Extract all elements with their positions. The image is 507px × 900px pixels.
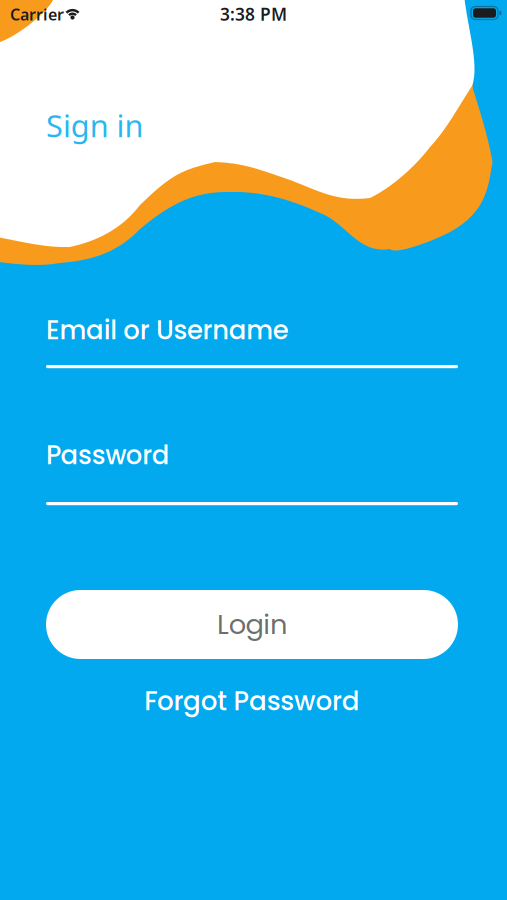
staticText: 3:38 PM — [220, 3, 287, 26]
staticText: Login — [217, 605, 287, 644]
button[interactable]: Login — [46, 590, 458, 659]
staticText: Password — [46, 437, 170, 473]
button[interactable]: Forgot Password — [46, 682, 458, 720]
staticText: Forgot Password — [144, 683, 360, 719]
staticText: Carrier — [10, 4, 64, 25]
staticText: Email or Username — [46, 312, 289, 348]
staticText: Sign in — [46, 105, 143, 146]
